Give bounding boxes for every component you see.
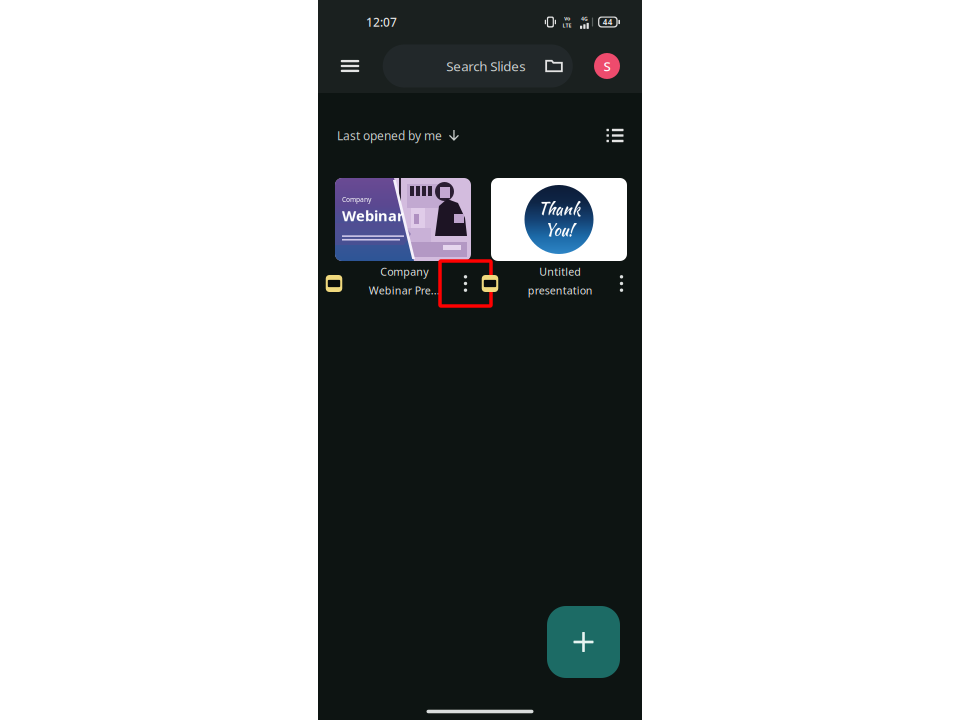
staticText: 12:07 [366, 14, 397, 30]
staticText: Vo [564, 15, 570, 22]
staticText: Last opened by me [337, 127, 442, 143]
staticText: Company [380, 265, 428, 279]
button[interactable]: Company [335, 261, 440, 306]
staticText: You! [544, 218, 573, 242]
button[interactable]: More options [440, 261, 491, 306]
button[interactable]: Account [592, 44, 622, 88]
button[interactable]: List view [602, 122, 628, 148]
staticText: 44 [603, 17, 613, 27]
button[interactable]: Search Slides [383, 44, 573, 87]
staticText: S [603, 57, 610, 75]
button[interactable]: Last opened by me [337, 118, 459, 152]
staticText: Company [342, 195, 371, 204]
staticText: Search Slides [446, 57, 525, 75]
staticText: Webinar Pre... [369, 283, 440, 297]
staticText: LTE [562, 22, 571, 29]
button[interactable]: Open Company Webinar Pre... [335, 178, 471, 261]
staticText: Untitled [539, 265, 581, 279]
staticText: Webinar [342, 206, 404, 225]
staticText: presentation [528, 283, 593, 297]
button[interactable]: New presentation [547, 606, 620, 678]
staticText: 4G [581, 15, 588, 22]
button[interactable]: Untitled [491, 261, 596, 306]
button[interactable]: Navigation menu [332, 44, 368, 88]
button[interactable]: Open Untitled presentation [491, 178, 627, 261]
staticText: Thank [538, 197, 580, 220]
button[interactable]: More options [596, 261, 647, 306]
